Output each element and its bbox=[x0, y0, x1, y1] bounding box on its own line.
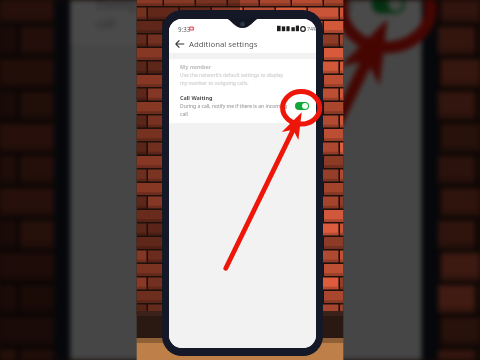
staticText: Additional settings bbox=[189, 39, 258, 50]
button[interactable]: My number bbox=[180, 63, 288, 87]
staticText: Call Waiting bbox=[180, 94, 213, 101]
button[interactable]: Call Waiting bbox=[180, 94, 288, 118]
staticText: Use the network's default settings to di… bbox=[180, 72, 288, 87]
button[interactable]: Call waiting switch, on bbox=[295, 102, 309, 110]
button[interactable]: Back bbox=[174, 35, 186, 53]
staticText: During a call, notify me if there is an … bbox=[97, 0, 355, 33]
staticText: 9:33 bbox=[178, 25, 191, 33]
staticText: During a call, notify me if there is an … bbox=[180, 103, 288, 118]
staticText: 74% bbox=[307, 25, 316, 32]
staticText: My number bbox=[180, 63, 212, 70]
button[interactable]: Call waiting switch, on bbox=[371, 0, 405, 14]
button[interactable]: Call Waiting bbox=[97, 0, 355, 33]
